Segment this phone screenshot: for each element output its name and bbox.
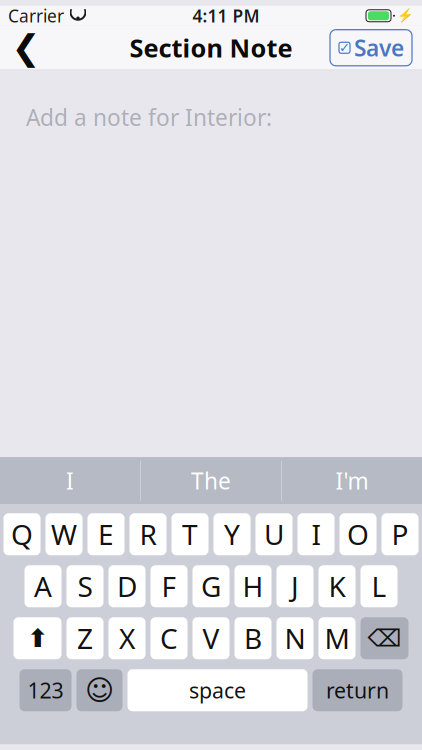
staticText: P: [391, 516, 408, 553]
button[interactable]: G: [192, 565, 229, 607]
button[interactable]: Numbers: [19, 669, 71, 711]
staticText: E: [98, 516, 114, 553]
button[interactable]: I: [297, 513, 334, 555]
button[interactable]: C: [150, 617, 187, 659]
staticText: C: [160, 620, 178, 657]
button[interactable]: P: [381, 513, 418, 555]
button[interactable]: Emoji: [76, 669, 122, 711]
staticText: ☺: [85, 674, 114, 706]
button[interactable]: U: [255, 513, 292, 555]
button[interactable]: M: [318, 617, 355, 659]
staticText: U: [264, 516, 284, 553]
staticText: A: [34, 568, 52, 605]
button[interactable]: E: [87, 513, 124, 555]
button[interactable]: N: [276, 617, 313, 659]
button[interactable]: F: [150, 565, 187, 607]
staticText: ❮: [11, 28, 40, 67]
button[interactable]: B: [234, 617, 271, 659]
staticText: G: [201, 568, 221, 605]
staticText: space: [189, 676, 246, 704]
staticText: Carrier: [8, 4, 64, 27]
button[interactable]: X: [108, 617, 145, 659]
staticText: Add a note for Interior:: [26, 102, 272, 132]
button[interactable]: V: [192, 617, 229, 659]
button[interactable]: W: [45, 513, 82, 555]
button[interactable]: D: [108, 565, 145, 607]
staticText: T: [182, 516, 198, 553]
staticText: N: [284, 620, 305, 657]
staticText: O: [347, 516, 369, 553]
staticText: K: [328, 568, 345, 605]
staticText: S: [77, 568, 92, 605]
staticText: ⚡: [397, 8, 414, 23]
staticText: V: [202, 620, 219, 657]
staticText: Y: [224, 516, 240, 553]
staticText: ⌫: [367, 625, 401, 652]
staticText: L: [371, 568, 386, 605]
button[interactable]: H: [234, 565, 271, 607]
button[interactable]: Shift: [13, 617, 61, 659]
staticText: Q: [11, 516, 33, 553]
button[interactable]: T: [171, 513, 208, 555]
button[interactable]: ✓: [330, 30, 422, 66]
button[interactable]: O: [339, 513, 376, 555]
staticText: 4:11 PM: [192, 4, 259, 27]
button[interactable]: Back: [0, 26, 52, 70]
staticText: Section Note: [129, 31, 292, 64]
staticText: I: [66, 466, 74, 496]
staticText: F: [161, 568, 176, 605]
staticText: D: [117, 568, 137, 605]
button[interactable]: S: [66, 565, 103, 607]
staticText: I: [311, 516, 320, 553]
staticText: X: [119, 620, 135, 657]
button[interactable]: I: [0, 457, 140, 504]
button[interactable]: Delete: [360, 617, 408, 659]
button[interactable]: L: [360, 565, 397, 607]
button[interactable]: K: [318, 565, 355, 607]
staticText: H: [242, 568, 263, 605]
staticText: W: [51, 516, 77, 553]
button[interactable]: Z: [66, 617, 103, 659]
staticText: M: [324, 620, 349, 657]
staticText: 123: [27, 676, 63, 704]
staticText: I'm: [335, 466, 368, 496]
staticText: B: [244, 620, 262, 657]
button[interactable]: Q: [3, 513, 40, 555]
button[interactable]: Y: [213, 513, 250, 555]
button[interactable]: return: [312, 669, 402, 711]
button[interactable]: space: [127, 669, 307, 711]
button[interactable]: J: [276, 565, 313, 607]
staticText: Save: [354, 33, 404, 63]
staticText: ✓: [339, 40, 350, 55]
button[interactable]: I'm: [282, 457, 422, 504]
staticText: R: [139, 516, 156, 553]
staticText: The: [191, 466, 231, 496]
staticText: return: [326, 676, 389, 704]
button[interactable]: The: [141, 457, 281, 504]
button[interactable]: R: [129, 513, 166, 555]
staticText: Z: [77, 620, 93, 657]
staticText: ⬆: [27, 624, 48, 653]
staticText: J: [291, 568, 299, 605]
button[interactable]: A: [24, 565, 61, 607]
